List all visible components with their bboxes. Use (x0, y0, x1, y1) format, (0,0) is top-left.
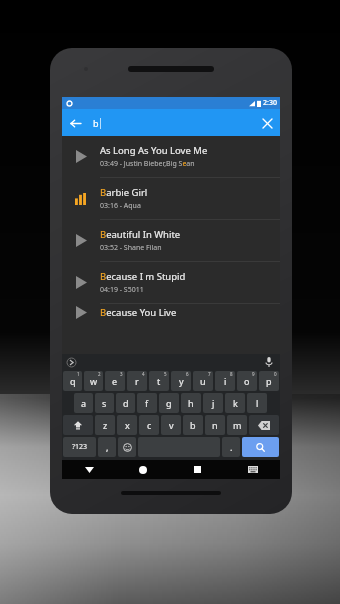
staticText: g (166, 397, 172, 409)
button[interactable]: w (84, 371, 103, 391)
button[interactable]: Clear search (257, 113, 277, 133)
button[interactable]: ?123 (63, 437, 96, 457)
staticText: w (90, 375, 98, 387)
button[interactable]: Beautiful In White (62, 220, 280, 262)
button[interactable]: a (74, 393, 93, 413)
staticText: Because You Live (100, 306, 177, 319)
staticText: p (266, 375, 272, 387)
button[interactable]: Expand suggestions (64, 355, 78, 369)
staticText: . (230, 441, 233, 453)
staticText: 04:19 - S5011 (100, 285, 144, 295)
button[interactable]: Because I m Stupid (62, 262, 280, 304)
button[interactable]: Because You Live (62, 304, 280, 320)
button[interactable]: h (181, 393, 201, 413)
button[interactable]: Barbie Girl (62, 178, 280, 220)
staticText: d (123, 397, 129, 409)
staticText: r (135, 375, 139, 387)
staticText: h (188, 397, 194, 409)
button[interactable]: x (117, 415, 137, 435)
button[interactable]: j (203, 393, 223, 413)
button[interactable]: l (247, 393, 267, 413)
staticText: 03:16 - Aqua (100, 201, 141, 211)
staticText: As Long As You Love Me (100, 144, 208, 157)
button[interactable]: Search (242, 437, 279, 457)
staticText: s (102, 397, 107, 409)
staticText: o (244, 375, 250, 387)
staticText: u (200, 375, 206, 387)
button[interactable]: g (159, 393, 179, 413)
staticText: 6 (186, 371, 189, 377)
staticText: j (212, 397, 215, 409)
staticText: 8 (230, 371, 233, 377)
button[interactable]: u (193, 371, 213, 391)
button[interactable]: d (116, 393, 135, 413)
button[interactable]: p (259, 371, 279, 391)
button[interactable]: v (161, 415, 181, 435)
button[interactable]: b (183, 415, 203, 435)
button[interactable]: Back (65, 113, 85, 133)
staticText: 2:30 (263, 98, 277, 108)
staticText: , (106, 441, 109, 453)
staticText: 9 (252, 371, 255, 377)
staticText: i (224, 375, 227, 387)
button[interactable]: Hide keyboard (62, 460, 116, 479)
button[interactable]: n (205, 415, 225, 435)
staticText: c (147, 419, 152, 431)
staticText: 2 (98, 371, 101, 377)
button[interactable]: t (149, 371, 169, 391)
staticText: n (212, 419, 218, 431)
staticText: y (179, 375, 184, 387)
staticText: 03:49 - Justin Bieber,Big Sean (100, 159, 195, 169)
button[interactable]: m (227, 415, 247, 435)
button[interactable]: Home (116, 460, 170, 479)
button[interactable]: f (137, 393, 157, 413)
button[interactable]: Switch keyboard (225, 460, 280, 479)
button[interactable]: o (237, 371, 257, 391)
staticText: Because I m Stupid (100, 270, 186, 283)
button[interactable]: Shift (63, 415, 93, 435)
staticText: z (103, 419, 108, 431)
button[interactable]: z (95, 415, 115, 435)
button[interactable]: As Long As You Love Me (62, 136, 280, 178)
staticText: m (233, 419, 242, 431)
staticText: k (233, 397, 238, 409)
staticText: x (125, 419, 130, 431)
staticText: 7 (208, 371, 211, 377)
button[interactable]: i (215, 371, 235, 391)
button[interactable]: . (222, 437, 240, 457)
staticText: l (256, 397, 259, 409)
staticText: 4 (142, 371, 145, 377)
button[interactable]: c (139, 415, 159, 435)
staticText: b (93, 117, 99, 129)
button[interactable]: Voice input (262, 355, 276, 369)
staticText: v (169, 419, 174, 431)
button[interactable]: Emoji (118, 437, 136, 457)
button[interactable]: y (171, 371, 191, 391)
staticText: 0 (274, 371, 277, 377)
button[interactable]: q (63, 371, 82, 391)
staticText: ?123 (72, 442, 88, 452)
staticText: t (157, 375, 161, 387)
button[interactable]: , (98, 437, 116, 457)
button[interactable]: Recent apps (170, 460, 225, 479)
staticText: 5 (164, 371, 167, 377)
staticText: b (190, 419, 196, 431)
button[interactable]: k (225, 393, 245, 413)
staticText: Barbie Girl (100, 186, 148, 199)
button[interactable]: Backspace (249, 415, 279, 435)
button[interactable]: s (95, 393, 114, 413)
staticText: q (70, 375, 76, 387)
staticText: f (145, 397, 149, 409)
button[interactable]: r (127, 371, 147, 391)
staticText: 3 (120, 371, 123, 377)
staticText: 1 (77, 371, 80, 377)
staticText: Beautiful In White (100, 228, 181, 241)
staticText: e (112, 375, 118, 387)
staticText: 03:52 - Shane Filan (100, 243, 162, 253)
button[interactable]: e (105, 371, 125, 391)
staticText: a (81, 397, 87, 409)
